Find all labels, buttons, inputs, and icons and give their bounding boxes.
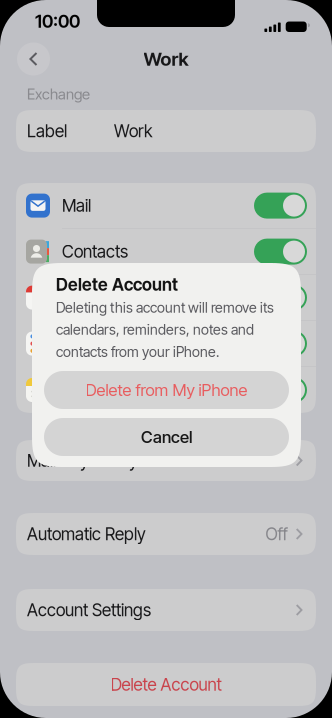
staticText: Notes	[62, 380, 105, 400]
staticText: Mail Days to Sync	[27, 450, 156, 471]
staticText: Label	[27, 121, 67, 141]
button[interactable]: Account Settings	[16, 589, 316, 631]
staticText: Exchange	[27, 85, 90, 103]
staticText: Deleting this account will remove its	[56, 299, 274, 316]
button[interactable]: Delete from My iPhone	[44, 371, 289, 409]
button[interactable]: Mail	[16, 183, 316, 228]
button[interactable]: Calendars	[16, 275, 316, 320]
staticText: Delete from My iPhone	[85, 380, 247, 400]
staticText: Mail	[62, 195, 91, 216]
staticText: Calendars	[62, 287, 137, 308]
button[interactable]: Label	[16, 110, 316, 152]
staticText: Work	[143, 48, 188, 70]
button[interactable]: Notes	[16, 367, 316, 413]
button[interactable]: Reminders	[16, 321, 316, 366]
staticText: Reminders	[62, 333, 140, 354]
button[interactable]: Delete Account	[16, 663, 316, 706]
button[interactable]: Back	[17, 42, 50, 75]
staticText: Contacts	[62, 241, 128, 262]
staticText: Automatic Reply	[27, 524, 146, 544]
staticText: contacts from your iPhone.	[56, 343, 219, 360]
staticText: Off	[265, 524, 287, 544]
staticText: Delete Account	[56, 274, 178, 295]
staticText: 10:00	[35, 10, 80, 32]
button[interactable]: Cancel	[44, 418, 289, 456]
staticText: Work	[114, 121, 152, 141]
staticText: calendars, reminders, notes and	[56, 321, 254, 338]
staticText: Cancel	[141, 427, 192, 447]
button[interactable]: Mail Days to Sync	[16, 440, 316, 481]
button[interactable]: Contacts	[16, 229, 316, 274]
button[interactable]: Automatic Reply	[16, 513, 316, 555]
staticText: Delete Account	[110, 674, 221, 695]
staticText: Account Settings	[27, 600, 151, 620]
